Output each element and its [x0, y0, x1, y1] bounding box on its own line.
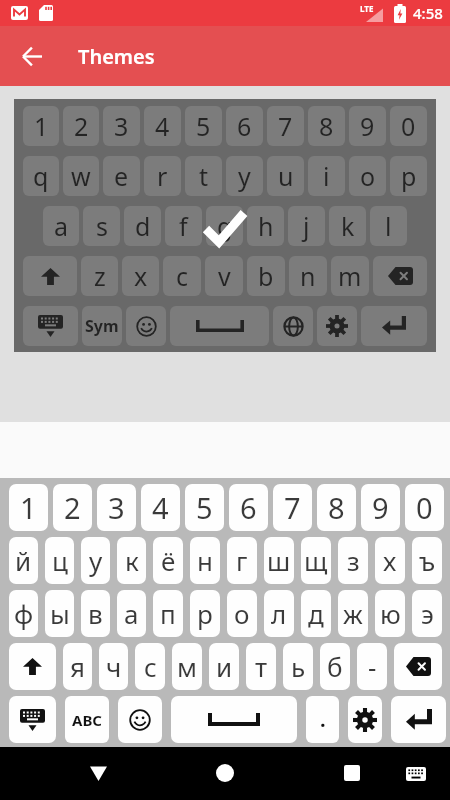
button[interactable]: а	[117, 590, 146, 637]
button[interactable]: в	[81, 590, 110, 637]
button[interactable]: ы	[45, 590, 74, 637]
button[interactable]: e	[103, 156, 140, 196]
button[interactable]: к	[117, 537, 146, 584]
button[interactable]: -	[357, 643, 387, 690]
button[interactable]: 1	[14, 99, 436, 352]
button[interactable]: 5	[185, 106, 222, 146]
button[interactable]: .	[306, 696, 339, 743]
button[interactable]: z	[81, 256, 118, 296]
button[interactable]: l	[370, 206, 407, 246]
button[interactable]: р	[190, 590, 220, 637]
button[interactable]	[348, 696, 382, 743]
button[interactable]: э	[412, 590, 442, 637]
button[interactable]	[402, 760, 430, 788]
button[interactable]: 4	[144, 106, 181, 146]
button[interactable]: f	[165, 206, 202, 246]
button[interactable]: т	[246, 643, 276, 690]
button[interactable]: 3	[103, 106, 140, 146]
button[interactable]: с	[135, 643, 165, 690]
button[interactable]	[170, 306, 269, 346]
button[interactable]: н	[190, 537, 220, 584]
button[interactable]: g	[206, 206, 243, 246]
button[interactable]	[118, 696, 162, 743]
button[interactable]: 2	[63, 106, 99, 146]
button[interactable]: ъ	[412, 537, 442, 584]
button[interactable]	[9, 643, 56, 690]
button[interactable]: 8	[317, 484, 356, 531]
button[interactable]	[171, 696, 297, 743]
button[interactable]: 9	[361, 484, 400, 531]
button[interactable]: 6	[226, 106, 263, 146]
button[interactable]: й	[9, 537, 38, 584]
button[interactable]: w	[63, 156, 99, 196]
button[interactable]: p	[390, 156, 427, 196]
button[interactable]: b	[247, 256, 285, 296]
button[interactable]: 3	[97, 484, 136, 531]
button[interactable]: ц	[45, 537, 74, 584]
button[interactable]: d	[124, 206, 161, 246]
button[interactable]	[394, 643, 442, 690]
button[interactable]: ш	[264, 537, 294, 584]
button[interactable]	[84, 759, 112, 787]
button[interactable]: м	[172, 643, 202, 690]
button[interactable]: Sym	[82, 306, 122, 346]
button[interactable]: 8	[308, 106, 345, 146]
button[interactable]	[317, 306, 357, 346]
button[interactable]	[23, 256, 77, 296]
button[interactable]	[0, 26, 64, 86]
button[interactable]: 6	[229, 484, 268, 531]
button[interactable]: s	[83, 206, 120, 246]
button[interactable]: и	[209, 643, 239, 690]
button[interactable]: 0	[390, 106, 427, 146]
button[interactable]: 7	[267, 106, 304, 146]
button[interactable]: c	[163, 256, 201, 296]
button[interactable]: ю	[375, 590, 405, 637]
button[interactable]: j	[288, 206, 325, 246]
button[interactable]: д	[301, 590, 331, 637]
button[interactable]	[211, 759, 239, 787]
button[interactable]: r	[144, 156, 181, 196]
button[interactable]: y	[226, 156, 263, 196]
button[interactable]: у	[81, 537, 110, 584]
button[interactable]	[273, 306, 313, 346]
button[interactable]: 9	[349, 106, 386, 146]
button[interactable]: ф	[9, 590, 38, 637]
button[interactable]	[373, 256, 427, 296]
button[interactable]: ж	[338, 590, 368, 637]
button[interactable]: 7	[273, 484, 312, 531]
button[interactable]: 1	[23, 106, 59, 146]
button[interactable]: щ	[301, 537, 331, 584]
button[interactable]: q	[23, 156, 59, 196]
button[interactable]: i	[308, 156, 345, 196]
button[interactable]: з	[338, 537, 368, 584]
button[interactable]: п	[153, 590, 183, 637]
button[interactable]: 0	[405, 484, 444, 531]
button[interactable]	[338, 759, 366, 787]
button[interactable]: x	[122, 256, 159, 296]
button[interactable]: л	[264, 590, 294, 637]
button[interactable]: k	[329, 206, 366, 246]
button[interactable]	[361, 306, 427, 346]
button[interactable]	[9, 696, 56, 743]
button[interactable]: m	[331, 256, 369, 296]
button[interactable]: v	[205, 256, 243, 296]
button[interactable]: ABC	[65, 696, 109, 743]
button[interactable]: u	[267, 156, 304, 196]
button[interactable]: t	[185, 156, 222, 196]
button[interactable]: o	[349, 156, 386, 196]
button[interactable]: г	[227, 537, 257, 584]
button[interactable]	[391, 696, 446, 743]
button[interactable]: ь	[283, 643, 313, 690]
button[interactable]: я	[63, 643, 92, 690]
button[interactable]: х	[375, 537, 405, 584]
button[interactable]: ё	[153, 537, 183, 584]
button[interactable]: ч	[99, 643, 128, 690]
button[interactable]: 2	[53, 484, 92, 531]
button[interactable]: 1	[9, 484, 48, 531]
button[interactable]: n	[289, 256, 327, 296]
button[interactable]: б	[320, 643, 350, 690]
button[interactable]	[23, 306, 78, 346]
button[interactable]: a	[43, 206, 79, 246]
button[interactable]: о	[227, 590, 257, 637]
button[interactable]: 4	[141, 484, 180, 531]
